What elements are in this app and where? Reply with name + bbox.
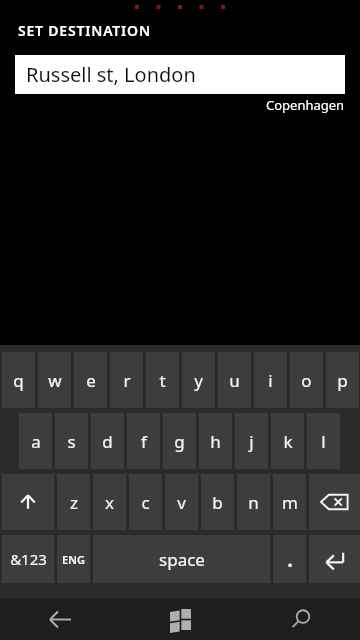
button[interactable]: e: [74, 352, 107, 408]
staticText: a: [31, 430, 41, 453]
button[interactable]: p: [326, 352, 359, 408]
button[interactable]: Copenhagen: [266, 96, 345, 114]
button[interactable]: Shift: [2, 474, 54, 530]
button[interactable]: ENG: [57, 535, 90, 583]
staticText: t: [159, 369, 166, 392]
button[interactable]: z: [57, 474, 90, 530]
staticText: f: [141, 430, 147, 453]
button[interactable]: w: [38, 352, 71, 408]
staticText: i: [268, 369, 273, 392]
staticText: ENG: [62, 552, 85, 567]
button[interactable]: l: [307, 413, 340, 469]
button[interactable]: h: [199, 413, 232, 469]
staticText: n: [248, 491, 259, 514]
button[interactable]: m: [273, 474, 306, 530]
button[interactable]: Enter: [309, 535, 360, 583]
button[interactable]: .: [273, 535, 306, 583]
button[interactable]: s: [55, 413, 88, 469]
staticText: q: [13, 369, 24, 392]
staticText: b: [212, 491, 223, 514]
staticText: p: [337, 369, 348, 392]
staticText: d: [102, 430, 113, 453]
staticText: l: [321, 430, 326, 453]
button[interactable]: u: [218, 352, 251, 408]
button[interactable]: b: [201, 474, 234, 530]
staticText: o: [301, 369, 312, 392]
staticText: SET DESTINATION: [18, 21, 151, 40]
button[interactable]: f: [127, 413, 160, 469]
button[interactable]: r: [110, 352, 143, 408]
staticText: v: [177, 491, 186, 514]
staticText: Russell st, London: [26, 61, 196, 88]
button[interactable]: space: [93, 535, 270, 583]
staticText: s: [67, 430, 76, 453]
button[interactable]: g: [163, 413, 196, 469]
button[interactable]: a: [19, 413, 52, 469]
button[interactable]: q: [2, 352, 35, 408]
button[interactable]: t: [146, 352, 179, 408]
staticText: r: [123, 369, 131, 392]
staticText: space: [159, 548, 205, 571]
button[interactable]: Russell st, London: [15, 55, 345, 94]
button[interactable]: n: [237, 474, 270, 530]
staticText: g: [174, 430, 185, 453]
staticText: w: [48, 369, 62, 392]
button[interactable]: i: [254, 352, 287, 408]
button[interactable]: &123: [2, 535, 54, 583]
staticText: &123: [10, 549, 47, 569]
staticText: j: [249, 430, 254, 453]
button[interactable]: y: [182, 352, 215, 408]
button[interactable]: Search: [240, 598, 360, 640]
staticText: c: [141, 491, 150, 514]
button[interactable]: k: [271, 413, 304, 469]
button[interactable]: x: [93, 474, 126, 530]
staticText: .: [287, 546, 293, 573]
staticText: h: [210, 430, 221, 453]
staticText: y: [194, 369, 203, 392]
staticText: x: [105, 491, 114, 514]
button[interactable]: Back: [0, 598, 120, 640]
button[interactable]: o: [290, 352, 323, 408]
staticText: u: [229, 369, 240, 392]
staticText: z: [70, 491, 78, 514]
button[interactable]: v: [165, 474, 198, 530]
button[interactable]: j: [235, 413, 268, 469]
staticText: k: [283, 430, 293, 453]
staticText: e: [86, 369, 96, 392]
button[interactable]: c: [129, 474, 162, 530]
button[interactable]: Backspace: [309, 474, 360, 530]
button[interactable]: d: [91, 413, 124, 469]
button[interactable]: Start: [120, 598, 240, 640]
staticText: m: [282, 491, 298, 514]
